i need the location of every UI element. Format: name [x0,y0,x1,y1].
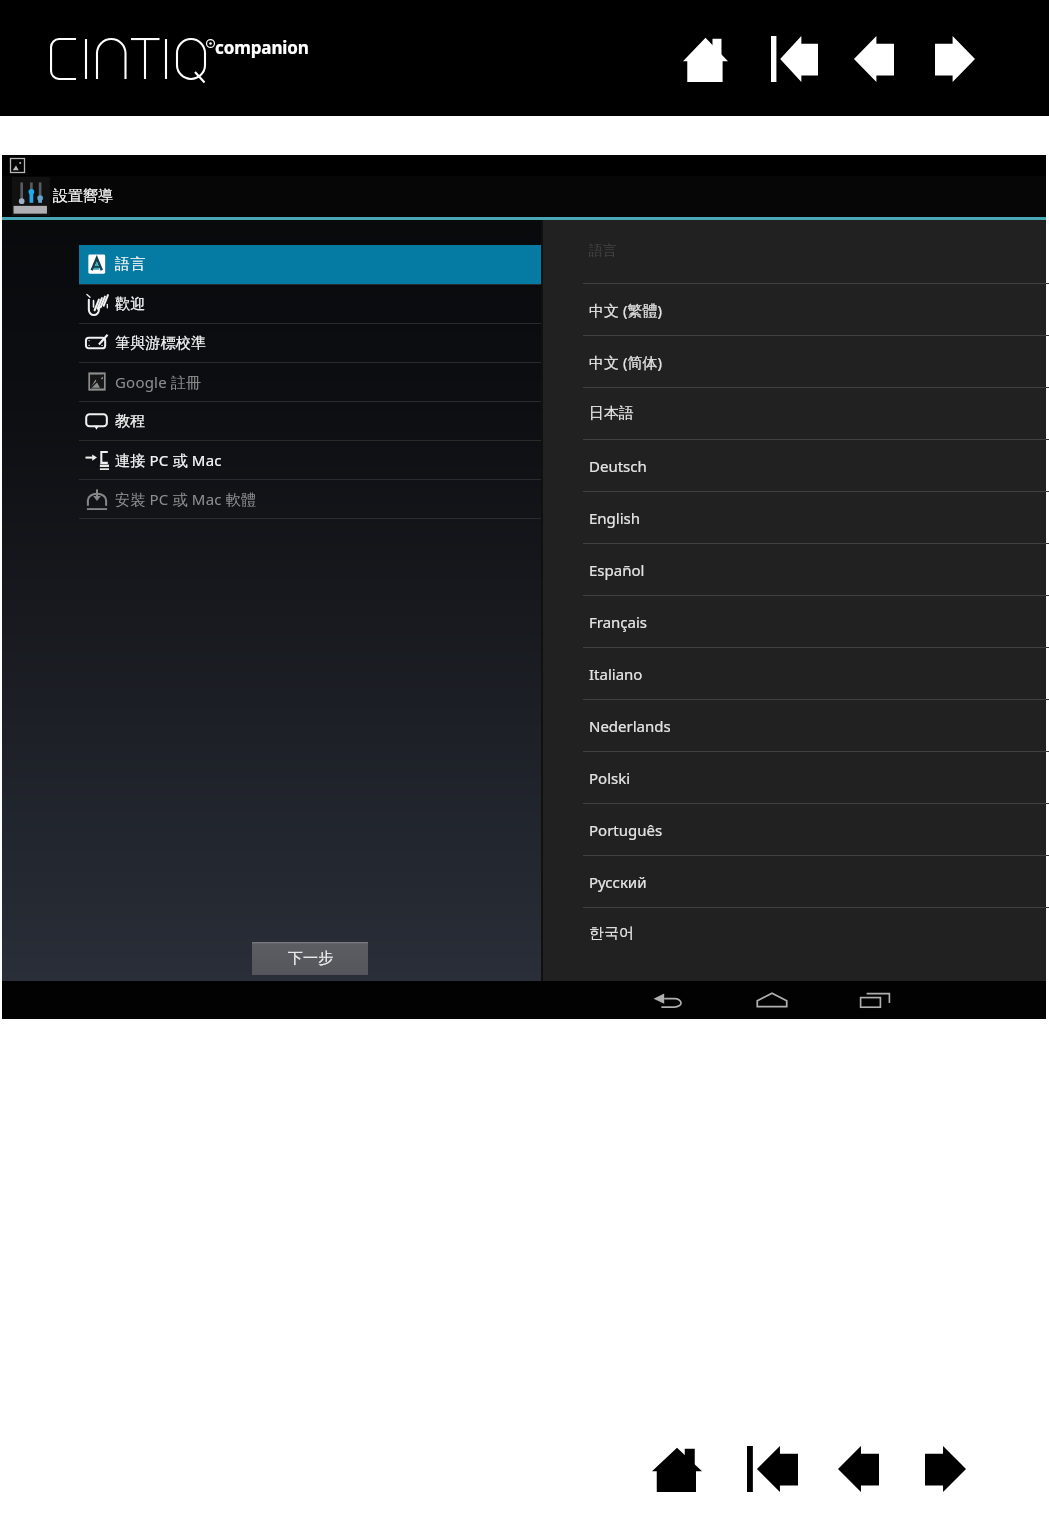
button[interactable]: Deutsch [543,440,1046,491]
button[interactable]: 中文 (简体) [543,336,1046,387]
staticText: 語言 [115,255,146,274]
staticText: Nederlands [589,716,671,736]
button[interactable]: 日本語 [543,388,1046,439]
staticText: 設置嚮導 [53,187,113,206]
button[interactable]: Next page [935,36,975,82]
button[interactable]: Polski [543,752,1046,803]
button[interactable]: First page [747,1446,798,1492]
button[interactable]: Home [720,981,824,1019]
staticText: 下一步 [288,949,333,968]
staticText: 歡迎 [115,295,146,314]
button[interactable]: Google 註冊 [79,363,545,401]
button[interactable]: Next page [925,1446,966,1492]
staticText: Deutsch [589,456,647,476]
button[interactable]: 歡迎 [79,285,545,323]
staticText: Google 註冊 [115,372,202,392]
staticText: Português [589,820,663,840]
button[interactable]: 下一步 [252,942,368,975]
button[interactable]: Previous page [838,1446,879,1492]
button[interactable]: 連接 PC 或 Mac [79,441,545,479]
staticText: English [589,508,641,528]
button[interactable]: Nederlands [543,700,1046,751]
staticText: 한국어 [589,924,634,943]
button[interactable]: Recent apps [827,981,923,1019]
staticText: 筆與游標校準 [115,334,207,353]
staticText: Polski [589,768,631,788]
button[interactable]: Italiano [543,648,1046,699]
button[interactable]: 語言 [79,245,545,284]
staticText: Italiano [589,664,643,684]
button[interactable]: Русский [543,856,1046,907]
button[interactable]: 한국어 [543,908,1046,959]
button[interactable]: Home [652,1446,702,1492]
staticText: 連接 PC 或 Mac [115,450,222,470]
button[interactable]: Home [683,36,728,82]
button[interactable]: Português [543,804,1046,855]
staticText: 教程 [115,412,146,431]
button[interactable]: First page [771,36,818,82]
button[interactable]: Back [619,981,715,1019]
button[interactable]: Français [543,596,1046,647]
staticText: 語言 [589,242,617,260]
button[interactable]: 中文 (繁體) [543,284,1046,335]
staticText: 中文 (繁體) [589,300,662,320]
staticText: Русский [589,872,647,892]
staticText: Français [589,612,648,632]
staticText: 中文 (简体) [589,352,662,372]
button[interactable]: 教程 [79,402,545,440]
staticText: 日本語 [589,404,634,423]
button[interactable]: 筆與游標校準 [79,324,545,362]
staticText: Español [589,560,645,580]
staticText: companion [215,36,309,59]
button[interactable]: Previous page [854,36,894,82]
button[interactable]: English [543,492,1046,543]
button[interactable]: Español [543,544,1046,595]
staticText: 安裝 PC 或 Mac 軟體 [115,489,257,509]
button[interactable]: 安裝 PC 或 Mac 軟體 [79,480,545,518]
